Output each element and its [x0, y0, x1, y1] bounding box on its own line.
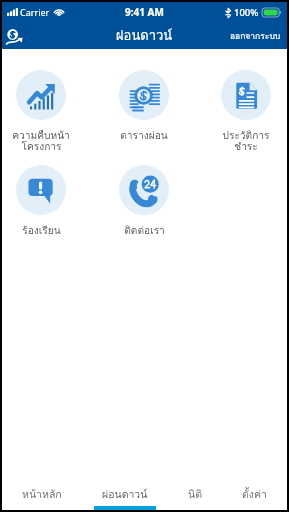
- staticText: ร้องเรียน: [22, 222, 61, 238]
- button[interactable]: ตั้งค่า: [234, 480, 275, 510]
- staticText: ผ่อนดาวน์: [116, 25, 173, 46]
- staticText: นิติ: [188, 486, 202, 503]
- staticText: 9:41 AM: [125, 5, 164, 19]
- button[interactable]: ตารางผ่อน: [108, 70, 180, 143]
- staticText: ประวัติการ: [222, 127, 270, 143]
- button[interactable]: ความคืบหน้า: [5, 70, 77, 159]
- staticText: ความคืบหน้า: [12, 127, 70, 143]
- staticText: ตั้งค่า: [242, 486, 267, 503]
- button[interactable]: หน้าหลัก: [14, 480, 70, 510]
- button[interactable]: ผ่อนดาวน์: [94, 480, 156, 510]
- staticText: ชำระ: [234, 138, 258, 154]
- button[interactable]: ร้องเรียน: [5, 165, 77, 238]
- staticText: Carrier: [20, 6, 50, 18]
- button[interactable]: ประวัติการ: [210, 70, 282, 159]
- staticText: ติดต่อเรา: [124, 222, 165, 238]
- button[interactable]: นิติ: [180, 480, 210, 510]
- button[interactable]: ติดต่อเรา: [108, 165, 180, 238]
- staticText: โครงการ: [21, 138, 62, 154]
- button[interactable]: Profile: [3, 24, 27, 48]
- staticText: หน้าหลัก: [22, 486, 62, 503]
- staticText: 100%: [234, 6, 259, 19]
- button[interactable]: ออกจากระบบ: [230, 29, 287, 43]
- staticText: ผ่อนดาวน์: [102, 486, 148, 503]
- staticText: ตารางผ่อน: [120, 127, 168, 143]
- staticText: ออกจากระบบ: [230, 29, 281, 43]
